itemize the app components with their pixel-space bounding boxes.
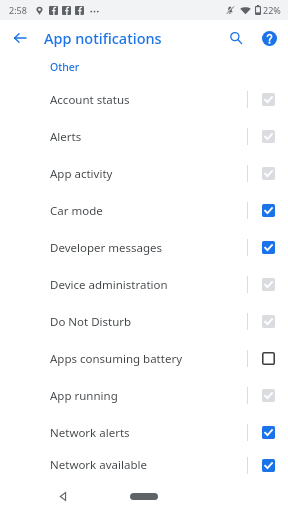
- staticText: App running: [50, 388, 247, 404]
- button[interactable]: Network alerts: [0, 414, 288, 451]
- staticText: Network available: [50, 457, 247, 473]
- staticText: Account status: [50, 92, 247, 108]
- staticText: 22%: [263, 4, 281, 16]
- button[interactable]: Back: [50, 484, 74, 508]
- button[interactable]: Do Not Disturb: [248, 303, 288, 340]
- staticText: App notifications: [44, 28, 162, 48]
- staticText: Developer messages: [50, 240, 247, 256]
- button[interactable]: Help: [256, 25, 282, 51]
- button[interactable]: Search: [223, 25, 249, 51]
- button[interactable]: Developer messages: [248, 229, 288, 266]
- staticText: Network alerts: [50, 425, 247, 441]
- button[interactable]: App running: [248, 377, 288, 414]
- button[interactable]: App activity: [0, 155, 288, 192]
- staticText: Alerts: [50, 129, 247, 145]
- button[interactable]: Do Not Disturb: [0, 303, 288, 340]
- staticText: 2:58: [9, 4, 27, 16]
- button[interactable]: Network alerts: [248, 414, 288, 451]
- button[interactable]: Network available: [248, 451, 288, 479]
- button[interactable]: Network available: [0, 451, 288, 479]
- button[interactable]: Alerts: [248, 118, 288, 155]
- button[interactable]: Device administration: [0, 266, 288, 303]
- button[interactable]: Device administration: [248, 266, 288, 303]
- staticText: Do Not Disturb: [50, 314, 247, 330]
- staticText: Car mode: [50, 203, 247, 219]
- button[interactable]: Account status: [0, 81, 288, 118]
- button[interactable]: Developer messages: [0, 229, 288, 266]
- button[interactable]: Back: [6, 24, 34, 52]
- staticText: Device administration: [50, 277, 247, 293]
- staticText: Apps consuming battery: [50, 351, 247, 367]
- button[interactable]: App running: [0, 377, 288, 414]
- button[interactable]: App activity: [248, 155, 288, 192]
- button[interactable]: Apps consuming battery: [0, 340, 288, 377]
- button[interactable]: Account status: [248, 81, 288, 118]
- button[interactable]: Apps consuming battery: [248, 340, 288, 377]
- button[interactable]: Car mode: [248, 192, 288, 229]
- button[interactable]: Alerts: [0, 118, 288, 155]
- staticText: App activity: [50, 166, 247, 182]
- button[interactable]: Home: [122, 484, 166, 508]
- staticText: Other: [50, 60, 80, 74]
- button[interactable]: Car mode: [0, 192, 288, 229]
